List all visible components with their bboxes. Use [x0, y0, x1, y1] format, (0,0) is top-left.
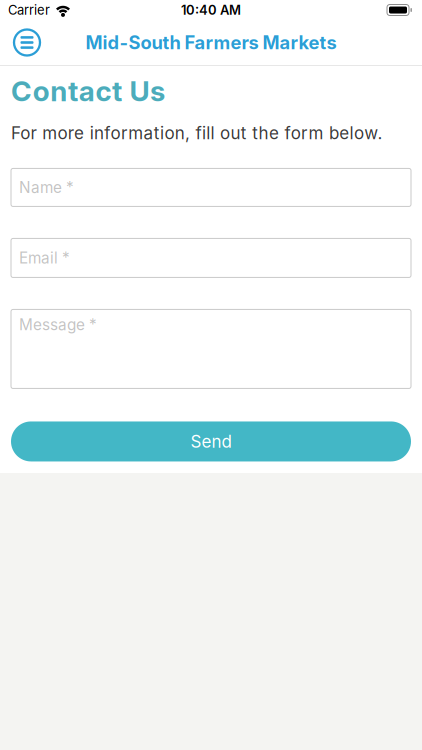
- button[interactable]: Send: [11, 421, 411, 461]
- staticText: Carrier: [8, 2, 50, 18]
- staticText: Contact Us: [11, 74, 165, 108]
- button[interactable]: Menu: [12, 27, 42, 57]
- staticText: 10:40 AM: [181, 2, 241, 18]
- staticText: For more information, fill out the form …: [11, 123, 382, 143]
- button[interactable]: Name *: [11, 168, 411, 206]
- staticText: Name *: [19, 178, 74, 197]
- staticText: Email *: [19, 249, 70, 267]
- staticText: Send: [190, 431, 231, 452]
- button[interactable]: Email *: [11, 238, 411, 277]
- button[interactable]: Message *: [11, 309, 411, 388]
- staticText: Message *: [19, 315, 97, 334]
- staticText: Mid-South Farmers Markets: [85, 31, 336, 53]
